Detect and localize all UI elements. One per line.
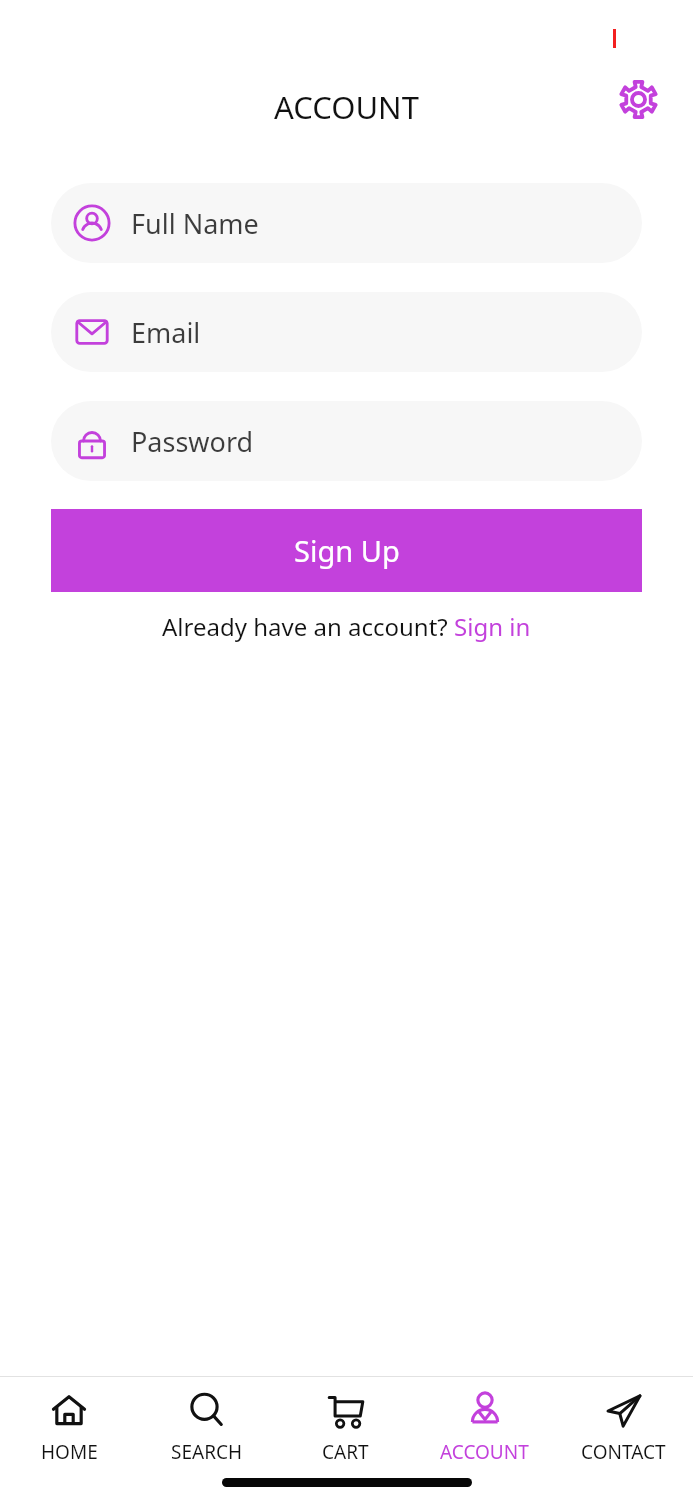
button[interactable]: CART	[276, 1377, 415, 1478]
staticText: Password	[131, 423, 254, 460]
staticText: CART	[322, 1439, 369, 1465]
staticText: Sign Up	[294, 531, 400, 570]
staticText: ACCOUNT	[440, 1439, 529, 1465]
staticText: HOME	[41, 1439, 98, 1465]
button[interactable]: Sign Up	[51, 509, 642, 592]
button[interactable]: Settings	[610, 71, 666, 127]
button[interactable]: Already have an account? Sign in	[158, 608, 535, 645]
staticText: ACCOUNT	[274, 86, 419, 128]
button[interactable]: SEARCH	[138, 1377, 276, 1478]
button[interactable]: CONTACT	[554, 1377, 693, 1478]
button[interactable]: Full Name	[51, 183, 642, 263]
button[interactable]: Password	[51, 401, 642, 481]
button[interactable]: HOME	[0, 1377, 138, 1478]
staticText: Already have an account? Sign in	[162, 610, 531, 643]
staticText: SEARCH	[171, 1439, 243, 1465]
staticText: Email	[131, 314, 201, 351]
staticText: Full Name	[131, 205, 259, 242]
staticText: CONTACT	[581, 1439, 666, 1465]
button[interactable]: ACCOUNT	[415, 1377, 554, 1478]
button[interactable]: Email	[51, 292, 642, 372]
